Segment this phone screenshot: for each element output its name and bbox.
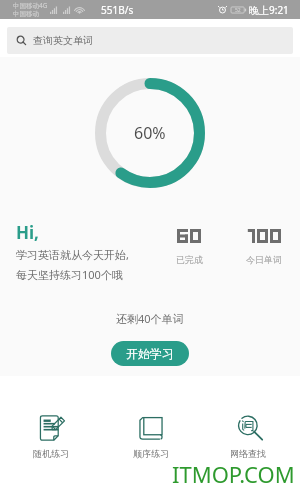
staticText: 52: [235, 7, 241, 14]
button[interactable]: 查询英文单词: [7, 27, 293, 54]
other: 网络查找: [237, 415, 263, 441]
staticText: 今日单词: [246, 254, 282, 265]
staticText: 中国移动4G: [13, 1, 48, 10]
button[interactable]: 顺序练习: [117, 415, 185, 459]
staticText: 网络查找: [230, 448, 266, 459]
staticText: 中国移动: [13, 10, 39, 18]
button[interactable]: 随机练习: [17, 415, 85, 459]
staticText: 学习英语就从今天开始, 每天坚持练习100个哦: [16, 247, 129, 282]
button[interactable]: 网络查找: [214, 415, 282, 459]
staticText: 已完成: [176, 254, 203, 265]
other: 顺序练习: [139, 415, 163, 441]
other: 随机练习: [39, 415, 63, 441]
staticText: 开始学习: [126, 346, 174, 361]
button[interactable]: 已完成: [159, 229, 219, 265]
button[interactable]: 开始学习: [111, 341, 189, 366]
button[interactable]: 今日单词: [234, 229, 294, 265]
staticText: 还剩40个单词: [116, 311, 184, 326]
staticText: 晚上9:21: [249, 3, 289, 17]
staticText: Hi,: [16, 221, 39, 244]
staticText: 顺序练习: [133, 448, 169, 459]
staticText: 60%: [134, 122, 166, 144]
staticText: 随机练习: [33, 448, 69, 459]
staticText: ITMOP.COM: [172, 459, 295, 489]
staticText: 查询英文单词: [33, 34, 93, 47]
staticText: 551B/s: [101, 3, 134, 17]
